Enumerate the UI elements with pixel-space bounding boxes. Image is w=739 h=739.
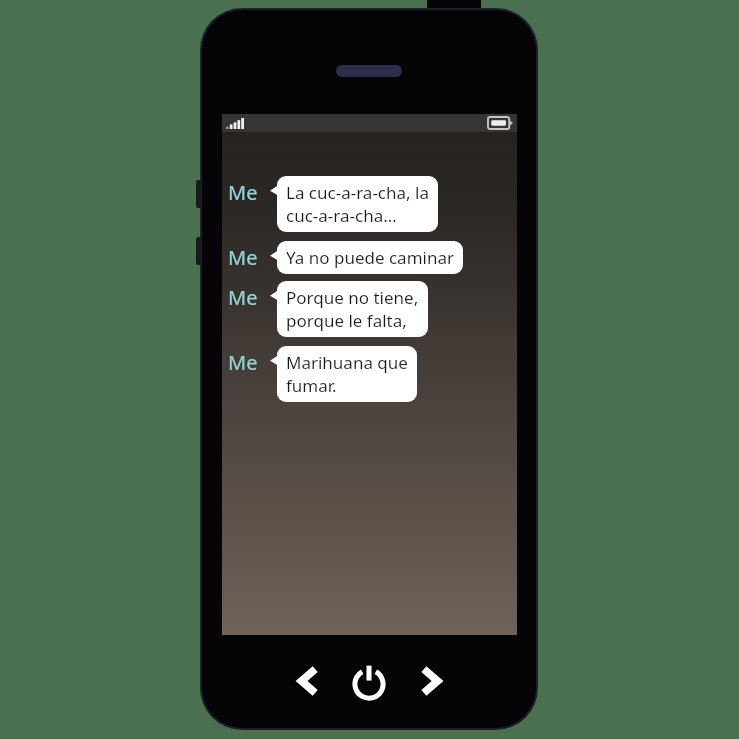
- button[interactable]: Me: [228, 176, 517, 232]
- button[interactable]: Back: [280, 653, 336, 709]
- button[interactable]: Me: [228, 346, 517, 402]
- staticText: Me: [228, 349, 268, 376]
- staticText: Marihuana que: [286, 351, 408, 374]
- button[interactable]: Me: [228, 241, 517, 274]
- button[interactable]: Forward: [402, 653, 458, 709]
- staticText: La cuc-a-ra-cha, la: [286, 181, 429, 204]
- staticText: porque le falta,: [286, 309, 407, 332]
- button[interactable]: Power: [340, 652, 398, 710]
- staticText: cuc-a-ra-cha…: [286, 204, 397, 227]
- staticText: Me: [228, 284, 268, 311]
- staticText: fumar.: [286, 374, 337, 397]
- staticText: Me: [228, 244, 268, 271]
- button[interactable]: Me: [228, 281, 517, 337]
- staticText: Me: [228, 179, 268, 206]
- staticText: Porque no tiene,: [286, 286, 419, 309]
- staticText: Ya no puede caminar: [286, 246, 454, 269]
